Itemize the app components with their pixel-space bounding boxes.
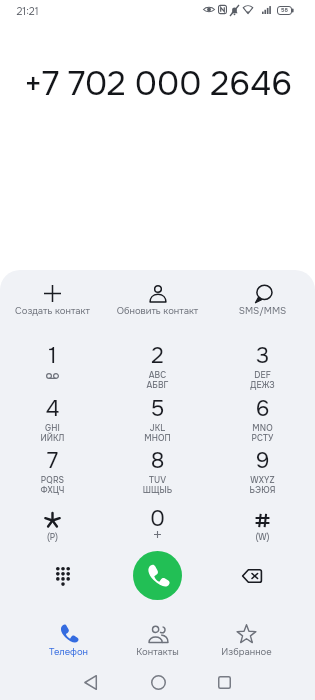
staticText: 21:21 — [16, 5, 39, 18]
staticText: Обновить контакт — [105, 305, 210, 317]
staticText: РСТУ — [210, 433, 315, 444]
button[interactable]: 5 — [105, 393, 210, 445]
button[interactable]: Телефон — [24, 622, 113, 658]
staticText: ИЙКЛ — [0, 433, 105, 444]
staticText: Телефон — [24, 646, 113, 658]
staticText: ДЕЖЗ — [210, 380, 315, 391]
button[interactable]: Show dialpad — [44, 557, 82, 595]
button[interactable]: 2 — [105, 340, 210, 392]
staticText: ЬЭЮЯ — [210, 485, 315, 496]
staticText: 3 — [210, 342, 315, 370]
staticText: ФХЦЧ — [0, 485, 105, 496]
button[interactable]: Recent apps — [202, 664, 246, 700]
staticText: Избранное — [202, 646, 291, 658]
button[interactable]: Back — [68, 664, 112, 700]
button[interactable]: 4 — [0, 393, 105, 445]
staticText: 8 — [105, 447, 210, 475]
staticText: JKL — [105, 423, 210, 434]
staticText: ABC — [105, 370, 210, 381]
staticText: GHI — [0, 423, 105, 434]
button[interactable]: Избранное — [202, 622, 291, 658]
button[interactable]: 6 — [210, 393, 315, 445]
staticText: SMS/MMS — [210, 305, 315, 317]
button[interactable]: 7 — [0, 445, 105, 497]
button[interactable]: Home — [136, 664, 180, 700]
button[interactable]: Создать контакт — [0, 278, 105, 326]
staticText: 6 — [210, 395, 315, 423]
button[interactable]: Обновить контакт — [105, 278, 210, 326]
staticText: Создать контакт — [0, 305, 105, 317]
staticText: 5 — [105, 395, 210, 423]
staticText: 4 — [0, 395, 105, 423]
button[interactable]: SMS/MMS — [210, 278, 315, 326]
staticText: 2 — [105, 342, 210, 370]
button[interactable]: 1 — [0, 340, 105, 392]
staticText: 1 — [0, 342, 105, 370]
staticText: PQRS — [0, 475, 105, 486]
staticText: (P) — [0, 532, 105, 543]
staticText: Контакты — [113, 646, 202, 658]
button[interactable]: Backspace — [233, 557, 271, 595]
staticText: 0 — [105, 505, 210, 533]
staticText: MNO — [210, 423, 315, 434]
button[interactable]: (P) — [0, 498, 105, 550]
button[interactable]: 9 — [210, 445, 315, 497]
staticText: МНОП — [105, 433, 210, 444]
button[interactable]: (W) — [210, 498, 315, 550]
staticText: WXYZ — [210, 475, 315, 486]
staticText: АБВГ — [105, 380, 210, 391]
button[interactable]: Call — [133, 551, 182, 600]
button[interactable]: 3 — [210, 340, 315, 392]
button[interactable]: Контакты — [113, 622, 202, 658]
staticText: 9 — [210, 447, 315, 475]
staticText: +7 702 000 2646 — [24, 63, 292, 106]
staticText: 58 — [281, 7, 288, 14]
staticText: ШЩЫЬ — [105, 485, 210, 496]
staticText: DEF — [210, 370, 315, 381]
staticText: TUV — [105, 475, 210, 486]
button[interactable]: 8 — [105, 445, 210, 497]
staticText: (W) — [210, 532, 315, 543]
staticText: 7 — [0, 447, 105, 475]
button[interactable]: 0 — [105, 498, 210, 550]
